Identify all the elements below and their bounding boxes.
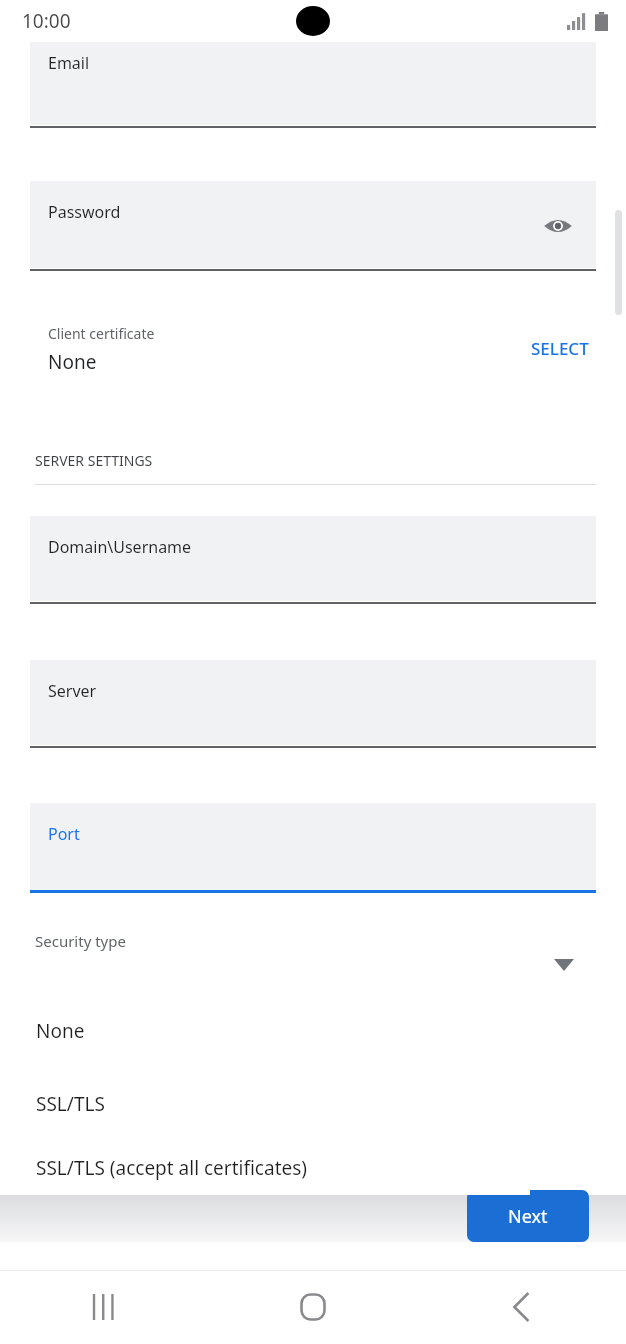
button[interactable]: Server <box>30 660 596 748</box>
staticText: Server <box>48 680 97 702</box>
button[interactable]: Back <box>492 1277 552 1337</box>
button[interactable]: Port <box>30 803 596 893</box>
staticText: None <box>48 349 97 375</box>
staticText: Port <box>48 823 80 845</box>
button[interactable]: SSL/TLS <box>24 1067 530 1140</box>
staticText: 10:00 <box>22 8 71 34</box>
staticText: SSL/TLS <box>36 1091 105 1117</box>
button[interactable]: Recent apps <box>74 1277 134 1337</box>
staticText: None <box>36 1018 85 1044</box>
button[interactable]: Show password <box>538 206 578 246</box>
button[interactable]: Domain\Username <box>30 516 596 604</box>
staticText: Email <box>48 52 90 74</box>
button[interactable]: Password <box>30 181 596 271</box>
staticText: SELECT <box>531 337 589 360</box>
staticText: SSL/TLS (accept all certificates) <box>36 1155 308 1181</box>
staticText: Domain\Username <box>48 536 192 558</box>
staticText: Password <box>48 201 121 223</box>
button[interactable]: Home <box>283 1277 343 1337</box>
staticText: SERVER SETTINGS <box>35 451 153 470</box>
staticText: Next <box>508 1204 548 1229</box>
button[interactable]: None <box>24 994 530 1067</box>
button[interactable]: Security type <box>30 931 596 1001</box>
staticText: Security type <box>35 931 126 951</box>
button[interactable]: Client certificate <box>30 324 596 396</box>
button[interactable]: Next <box>467 1190 589 1242</box>
button[interactable]: Email <box>30 42 596 128</box>
staticText: Client certificate <box>48 324 155 343</box>
button[interactable]: SSL/TLS (accept all certificates) <box>24 1140 530 1195</box>
